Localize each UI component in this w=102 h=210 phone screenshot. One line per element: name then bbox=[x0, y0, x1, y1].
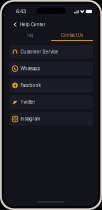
staticText: Faq bbox=[26, 32, 33, 38]
button[interactable]: Twitter bbox=[9, 95, 93, 109]
staticText: Twitter bbox=[20, 100, 35, 105]
staticText: Instagram bbox=[20, 116, 40, 122]
button[interactable]: Instagram bbox=[9, 112, 93, 126]
button[interactable]: Contact Us bbox=[51, 30, 93, 41]
staticText: 6:43 bbox=[16, 8, 26, 14]
staticText: Contact Us bbox=[61, 32, 83, 38]
staticText: Facebook bbox=[20, 83, 40, 88]
button[interactable]: Customer Service bbox=[9, 45, 93, 59]
staticText: Customer Service bbox=[20, 49, 58, 54]
button[interactable]: Facebook bbox=[9, 79, 93, 92]
staticText: Whatsapp bbox=[20, 66, 40, 71]
staticText: Help Center bbox=[20, 22, 46, 27]
button[interactable]: Faq bbox=[9, 30, 51, 41]
button[interactable]: Whatsapp bbox=[9, 62, 93, 75]
button[interactable]: Back bbox=[12, 20, 19, 29]
